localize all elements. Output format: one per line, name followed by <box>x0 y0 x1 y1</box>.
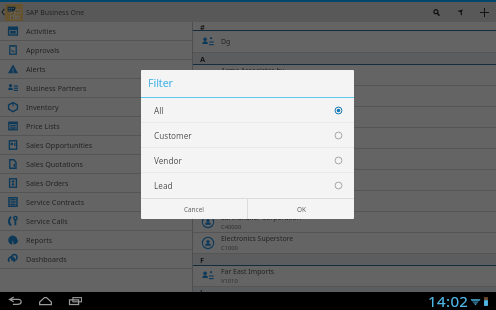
staticText: OK <box>297 205 306 214</box>
staticText: Alerts <box>26 64 46 74</box>
staticText: Delta Industries <box>221 192 273 201</box>
button[interactable]: Price Lists <box>0 117 192 135</box>
staticText: Dashboards <box>26 254 67 264</box>
button[interactable]: Lead <box>141 173 354 198</box>
staticText: Sales Opportunities <box>26 140 93 150</box>
button[interactable]: Back <box>0 3 5 21</box>
staticText: All <box>154 105 164 116</box>
button[interactable]: Service Calls <box>0 212 192 230</box>
button[interactable]: Filter <box>451 3 470 22</box>
button[interactable]: Dg <box>193 31 496 53</box>
button[interactable]: Sales Orders <box>0 174 192 192</box>
button[interactable]: Alpha Holdings Ltd <box>193 86 496 107</box>
staticText: Service Calls <box>26 216 68 226</box>
button[interactable]: Approvals <box>0 41 192 59</box>
staticText: C22000 <box>221 118 242 126</box>
staticText: Cancel <box>184 205 204 214</box>
staticText: Approvals <box>26 45 60 55</box>
button[interactable]: Aurora Group <box>193 128 496 149</box>
staticText: Acme Associates bv <box>221 66 285 75</box>
button[interactable]: All <box>141 98 354 122</box>
button[interactable]: Alerts <box>0 60 192 78</box>
staticText: Central Supplies <box>221 171 274 180</box>
staticText: A <box>200 54 206 64</box>
button[interactable]: Sales Opportunities <box>0 136 192 154</box>
button[interactable]: Bluewave Trading <box>193 149 496 170</box>
staticText: C21000 <box>221 97 242 105</box>
button[interactable]: Acme Associates bv <box>193 65 496 86</box>
staticText: Sales Quotations <box>26 159 83 169</box>
button[interactable]: Delta Industries <box>193 191 496 212</box>
staticText: Dg <box>221 37 231 46</box>
staticText: F <box>200 255 205 265</box>
button[interactable]: Recents <box>67 292 84 310</box>
button[interactable]: Inventory <box>0 98 192 116</box>
button[interactable]: Back <box>7 292 24 310</box>
button[interactable]: Add <box>475 3 494 22</box>
button[interactable]: Home <box>37 292 54 310</box>
button[interactable]: Far East Imports <box>193 266 496 287</box>
button[interactable]: Customer <box>141 123 354 147</box>
staticText: Customer <box>154 130 192 141</box>
button[interactable]: Earthshaker Corporation <box>193 212 496 233</box>
button[interactable]: OK <box>248 199 354 219</box>
button[interactable]: Business Partners <box>0 79 192 97</box>
button[interactable]: Cancel <box>141 199 247 219</box>
staticText: C1000 <box>221 244 238 252</box>
staticText: C40000 <box>221 223 242 231</box>
staticText: Business Partners <box>26 83 87 93</box>
staticText: # <box>200 22 205 30</box>
button[interactable]: Dashboards <box>0 250 192 268</box>
staticText: V1010 <box>221 277 238 285</box>
staticText: Vendor <box>154 155 182 166</box>
button[interactable]: Central Supplies <box>193 170 496 191</box>
staticText: Filter <box>148 76 173 90</box>
button[interactable]: Reports <box>0 231 192 249</box>
staticText: Price Lists <box>26 121 60 131</box>
staticText: Inventory <box>26 102 59 112</box>
staticText: Activities <box>26 26 56 36</box>
staticText: SAP Business One <box>26 8 85 17</box>
staticText: Far East Imports <box>221 267 275 276</box>
button[interactable]: Electronics Superstore <box>193 233 496 254</box>
staticText: Earthshaker Corporation <box>221 213 301 222</box>
button[interactable]: Arrow Components <box>193 107 496 128</box>
button[interactable]: Vendor <box>141 148 354 172</box>
button[interactable]: Activities <box>0 22 192 40</box>
button[interactable]: Service Contracts <box>0 193 192 211</box>
staticText: Lead <box>154 180 173 191</box>
staticText: Reports <box>26 235 53 245</box>
button[interactable]: Search <box>427 3 446 22</box>
staticText: Service Contracts <box>26 197 85 207</box>
staticText: 14:02 <box>428 291 469 309</box>
staticText: Electronics Superstore <box>221 234 294 243</box>
staticText: Sales Orders <box>26 178 69 188</box>
staticText: L <box>200 287 205 292</box>
button[interactable]: Sales Quotations <box>0 155 192 173</box>
